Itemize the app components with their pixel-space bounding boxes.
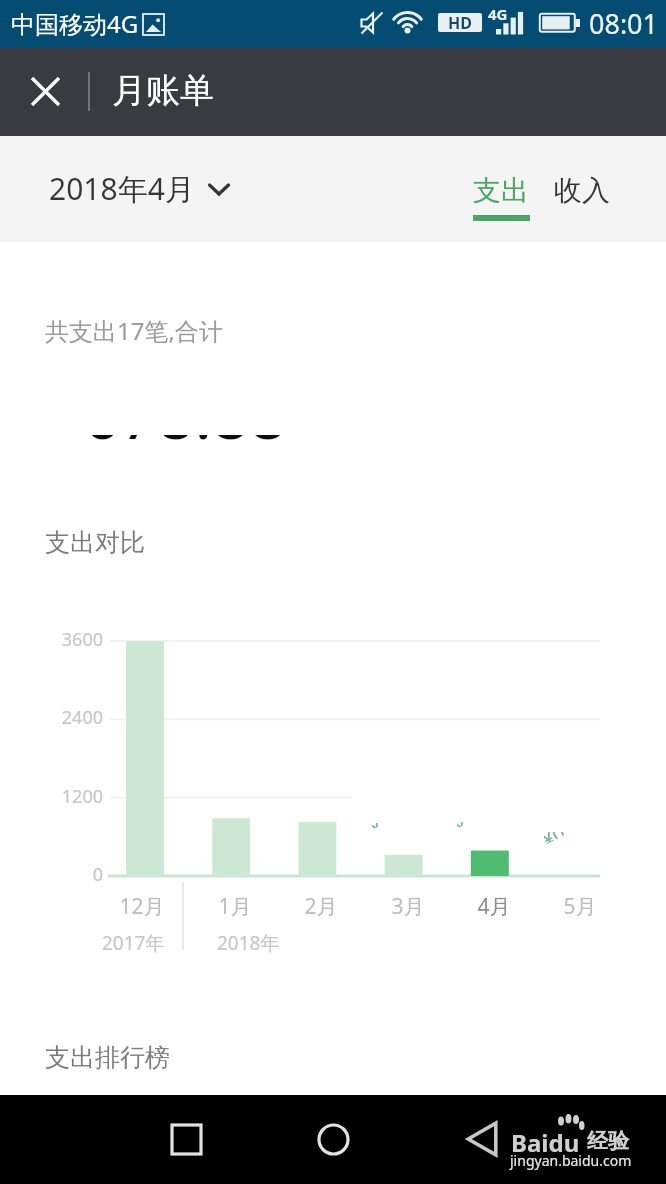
staticText: 2月 — [286, 892, 356, 921]
staticText: 4月 — [459, 892, 529, 921]
staticText: jingyan.baidu.com — [510, 1151, 666, 1170]
button[interactable]: Home — [299, 1105, 367, 1173]
staticText: 共支出17笔,合计 — [45, 314, 223, 347]
staticText: 支出 — [473, 173, 529, 208]
staticText: 月账单 — [112, 69, 214, 112]
staticText: 支出对比 — [45, 527, 145, 558]
staticText: 2017年 — [102, 930, 165, 956]
staticText: 3月 — [373, 892, 443, 921]
staticText: 1200 — [43, 784, 103, 809]
staticText: 5月 — [545, 892, 615, 921]
staticText: ¥325 — [372, 823, 390, 830]
staticText: 2018年4月 — [49, 168, 195, 209]
staticText: 2018年 — [217, 930, 280, 956]
staticText: ¥0 — [544, 832, 565, 845]
staticText: 0 — [43, 862, 103, 887]
staticText: Baidu — [511, 1126, 580, 1159]
button[interactable]: 支出 — [461, 168, 541, 230]
staticText: 3600 — [43, 627, 103, 652]
staticText: 12月 — [107, 892, 177, 921]
staticText: 2400 — [43, 705, 103, 730]
staticText: 1月 — [200, 892, 270, 921]
staticText: 收入 — [554, 173, 610, 208]
staticText: 经验 — [587, 1128, 629, 1154]
button[interactable]: Recents — [152, 1105, 220, 1173]
staticText: 4G — [488, 4, 508, 24]
staticText: 08:01 — [589, 5, 659, 42]
button[interactable]: Close — [19, 65, 71, 117]
staticText: 支出排行榜 — [45, 1042, 170, 1073]
staticText: 678.88 — [83, 435, 287, 450]
button[interactable]: 2018年4月 — [39, 168, 240, 209]
staticText: HD — [448, 12, 472, 31]
button[interactable]: Back — [448, 1105, 516, 1173]
staticText: ¥390 — [457, 822, 475, 829]
staticText: 中国移动4G — [11, 7, 139, 40]
button[interactable]: 收入 — [542, 168, 622, 216]
